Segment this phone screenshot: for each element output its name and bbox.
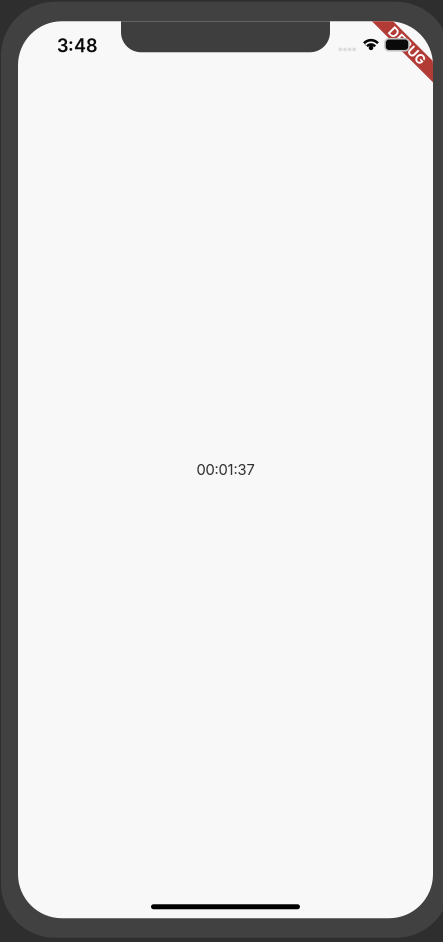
staticText: 3:48 — [57, 35, 98, 57]
staticText: DEBUG — [383, 38, 430, 54]
staticText: 00:01:37 — [196, 461, 254, 479]
